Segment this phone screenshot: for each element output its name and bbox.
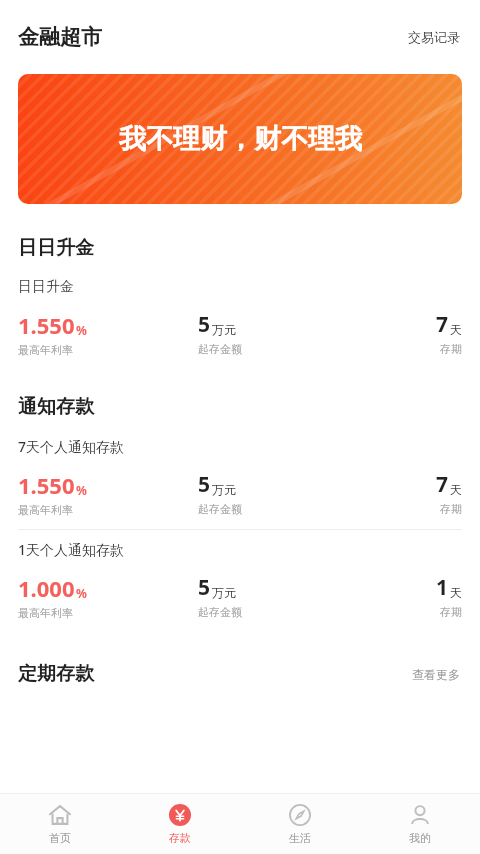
staticText: 1天个人通知存款 bbox=[18, 540, 125, 559]
staticText: 1 bbox=[436, 573, 449, 602]
staticText: % bbox=[76, 482, 87, 498]
staticText: 定期存款 bbox=[18, 662, 94, 686]
staticText: 我不理财，财不理我 bbox=[119, 122, 362, 156]
staticText: 起存金额 bbox=[198, 502, 242, 516]
staticText: 万元 bbox=[212, 482, 236, 497]
staticText: 7 bbox=[436, 470, 449, 499]
staticText: 5 bbox=[198, 470, 211, 499]
button[interactable]: 首页 bbox=[0, 797, 120, 851]
staticText: 5 bbox=[198, 310, 211, 339]
staticText: 天 bbox=[450, 322, 462, 337]
button[interactable]: 1天个人通知存款 bbox=[0, 530, 480, 632]
staticText: 存款 bbox=[169, 831, 191, 845]
button[interactable]: 查看更多 bbox=[410, 663, 462, 686]
staticText: 万元 bbox=[212, 585, 236, 600]
staticText: 起存金额 bbox=[198, 342, 242, 356]
staticText: 日日升金 bbox=[18, 278, 74, 296]
staticText: 7 bbox=[436, 310, 449, 339]
button[interactable]: 7天个人通知存款 bbox=[0, 427, 480, 529]
button[interactable]: 日日升金 bbox=[0, 268, 480, 369]
staticText: 首页 bbox=[49, 831, 71, 845]
staticText: % bbox=[76, 322, 87, 338]
staticText: 1.550 bbox=[18, 310, 75, 340]
button[interactable]: 生活 bbox=[240, 797, 360, 851]
staticText: 1.550 bbox=[18, 470, 75, 500]
staticText: 最高年利率 bbox=[18, 606, 73, 620]
staticText: 金融超市 bbox=[18, 24, 102, 50]
staticText: 天 bbox=[450, 482, 462, 497]
button[interactable]: 我不理财，财不理我 bbox=[18, 74, 462, 204]
staticText: 交易记录 bbox=[408, 29, 460, 45]
staticText: 日日升金 bbox=[18, 236, 94, 260]
staticText: 5 bbox=[198, 573, 211, 602]
staticText: 最高年利率 bbox=[18, 503, 73, 517]
staticText: 最高年利率 bbox=[18, 343, 73, 357]
staticText: 起存金额 bbox=[198, 605, 242, 619]
button[interactable]: 我的 bbox=[360, 797, 480, 851]
staticText: % bbox=[76, 585, 87, 601]
button[interactable]: 交易记录 bbox=[406, 25, 462, 49]
staticText: 7天个人通知存款 bbox=[18, 437, 125, 456]
staticText: 存期 bbox=[440, 342, 462, 356]
staticText: 通知存款 bbox=[18, 395, 94, 419]
staticText: 我的 bbox=[409, 831, 431, 845]
staticText: 生活 bbox=[289, 831, 311, 845]
staticText: 天 bbox=[450, 585, 462, 600]
staticText: 存期 bbox=[440, 502, 462, 516]
button[interactable]: 存款 bbox=[120, 797, 240, 851]
staticText: 1.000 bbox=[18, 573, 75, 603]
staticText: 存期 bbox=[440, 605, 462, 619]
staticText: 查看更多 bbox=[412, 667, 460, 682]
staticText: 万元 bbox=[212, 322, 236, 337]
